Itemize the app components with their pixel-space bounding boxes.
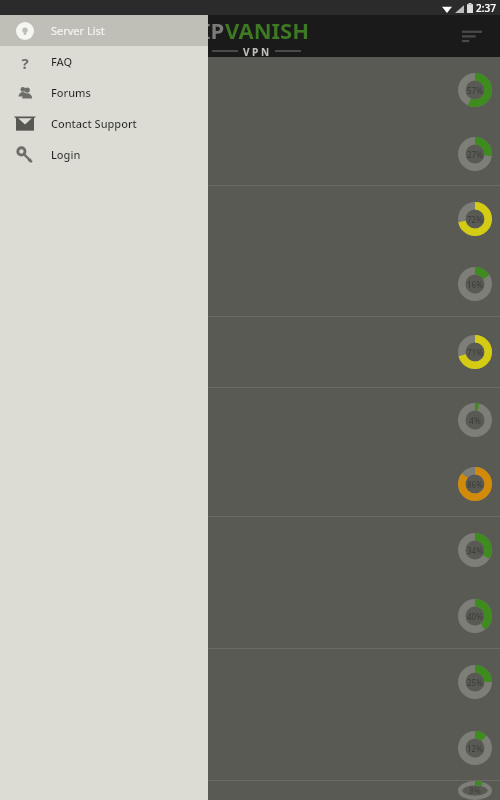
staticText: 12% (467, 743, 483, 754)
button[interactable]: 40% (0, 583, 500, 648)
staticText: 27% (467, 149, 483, 160)
button[interactable]: 4% (0, 388, 500, 451)
button[interactable]: 71% (0, 317, 500, 387)
button[interactable]: 27% (0, 122, 500, 185)
staticText: Server List (51, 23, 105, 38)
button[interactable]: 8% (0, 781, 500, 800)
staticText: 57% (467, 85, 483, 96)
staticText: FAQ (51, 54, 73, 69)
staticText: 8% (469, 785, 481, 796)
button[interactable]: 72% (0, 186, 500, 251)
button[interactable]: Filter servers (452, 16, 492, 56)
staticText: 86% (467, 479, 483, 490)
staticText: 72% (467, 214, 483, 225)
staticText: 71% (467, 347, 483, 358)
button[interactable]: 34% (0, 517, 500, 583)
button[interactable]: Contact Support (0, 108, 208, 139)
staticText: ? (21, 53, 29, 71)
button[interactable]: Forums (0, 77, 208, 108)
button[interactable]: 57% (0, 57, 500, 122)
staticText: V P N (243, 45, 270, 57)
button[interactable]: 12% (0, 715, 500, 780)
staticText: 4% (469, 415, 481, 426)
button[interactable]: Login (0, 139, 208, 170)
staticText: Login (51, 147, 81, 162)
staticText: 40% (467, 611, 483, 622)
button[interactable]: Server List (0, 15, 208, 46)
button[interactable]: 86% (0, 451, 500, 516)
staticText: 2:37 (476, 1, 496, 15)
staticText: Contact Support (51, 116, 137, 131)
button[interactable]: 25% (0, 649, 500, 715)
staticText: VANISH (225, 15, 310, 45)
staticText: IP (202, 15, 225, 45)
staticText: Forums (51, 85, 91, 100)
staticText: 34% (467, 545, 483, 556)
staticText: 25% (467, 677, 483, 688)
button[interactable]: 16% (0, 251, 500, 316)
staticText: 16% (467, 279, 483, 290)
button[interactable]: ? (0, 46, 208, 77)
